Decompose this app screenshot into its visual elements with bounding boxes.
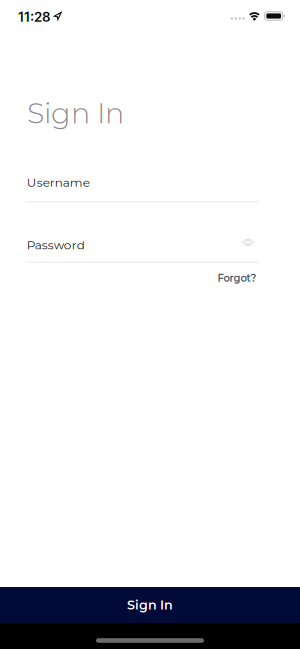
button[interactable]: Forgot?	[217, 272, 256, 284]
button[interactable]: Password	[27, 238, 258, 263]
button[interactable]: Show password	[242, 239, 254, 246]
staticText: Sign In	[127, 597, 173, 613]
staticText: Username	[27, 175, 90, 190]
button[interactable]: Username	[27, 175, 258, 202]
staticText: 11:28	[18, 9, 51, 25]
staticText: Forgot?	[217, 272, 256, 284]
staticText: Password	[27, 238, 85, 252]
button[interactable]: Sign In	[0, 587, 300, 623]
staticText: Sign In	[27, 95, 124, 130]
